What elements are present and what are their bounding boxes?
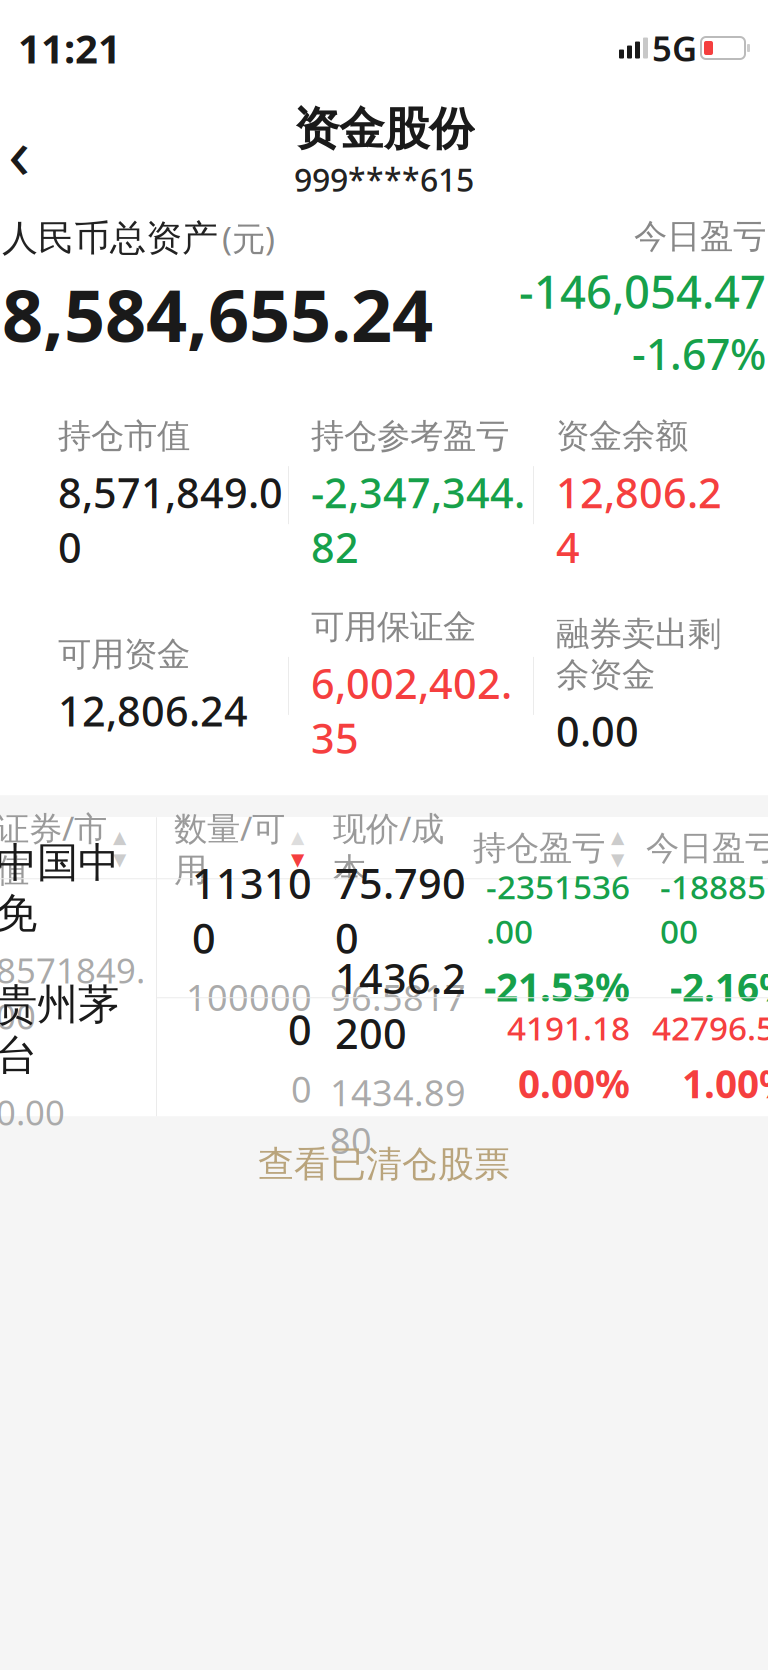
- staticText: 0: [288, 1002, 312, 1057]
- staticText: 资金余额: [556, 416, 688, 457]
- staticText: -2.16%: [670, 961, 768, 1012]
- staticText: 6,002,402.35: [311, 655, 512, 765]
- staticText: ▼: [291, 850, 304, 869]
- staticText: 查看已清仓股票: [258, 1142, 510, 1186]
- staticText: 持仓参考盈亏: [311, 416, 509, 457]
- staticText: 0.00: [556, 703, 639, 758]
- staticText: -2351536.00: [486, 864, 630, 953]
- staticText: 人民币总资产: [2, 216, 218, 260]
- button[interactable]: 返回: [0, 116, 54, 186]
- button[interactable]: 贵州茅台: [0, 998, 768, 1116]
- staticText: 12,806.24: [556, 465, 722, 574]
- staticText: 证券/市值: [0, 806, 107, 891]
- staticText: 100000: [186, 973, 312, 1021]
- staticText: ▼: [611, 850, 624, 869]
- button[interactable]: 中国中免: [0, 879, 768, 998]
- staticText: 0.00: [0, 1089, 65, 1135]
- staticText: 今日盈亏: [646, 828, 768, 869]
- staticText: 8,584,655.24: [2, 266, 433, 362]
- staticText: 1.00%: [682, 1058, 768, 1109]
- staticText: 今日盈亏: [634, 216, 766, 257]
- staticText: 999****615: [294, 158, 474, 201]
- staticText: 113100: [192, 855, 312, 965]
- staticText: 1434.8980: [330, 1068, 466, 1164]
- staticText: 8571849.00: [0, 947, 145, 1039]
- staticText: 1436.2200: [335, 950, 466, 1060]
- staticText: 持仓盈亏: [473, 828, 605, 869]
- staticText: 5G: [652, 25, 697, 71]
- staticText: 0: [291, 1065, 312, 1113]
- staticText: -146,054.47: [519, 261, 766, 321]
- staticText: ▲: [113, 827, 126, 847]
- staticText: 资金股份: [294, 101, 474, 157]
- staticText: 现价/成本: [333, 806, 444, 891]
- button[interactable]: 查看已清仓股票: [0, 1116, 768, 1212]
- staticText: -21.53%: [484, 961, 630, 1012]
- staticText: ▼: [113, 850, 126, 869]
- staticText: 11:21: [18, 21, 121, 74]
- staticText: 0.00%: [518, 1058, 630, 1109]
- staticText: ▲: [291, 827, 304, 847]
- staticText: 数量/可用: [174, 806, 285, 891]
- staticText: -1.67%: [632, 325, 766, 382]
- staticText: 融券卖出剩余资金: [556, 613, 721, 695]
- staticText: (元): [222, 216, 275, 260]
- staticText: 贵州茅台: [0, 979, 119, 1081]
- staticText: ‹: [8, 103, 30, 199]
- staticText: 8,571,849.00: [58, 465, 283, 574]
- staticText: -2,347,344.82: [311, 465, 525, 574]
- staticText: -188851.00: [660, 864, 768, 953]
- staticText: 中国中免: [0, 837, 119, 939]
- staticText: 75.7900: [335, 855, 466, 965]
- staticText: 96.5817: [330, 973, 466, 1021]
- staticText: 4191.18: [507, 1005, 630, 1050]
- staticText: 持仓市值: [58, 416, 190, 457]
- staticText: 可用资金: [58, 634, 190, 675]
- staticText: 12,806.24: [58, 683, 248, 738]
- staticText: 可用保证金: [311, 606, 476, 647]
- staticText: 42796.50: [652, 1005, 768, 1050]
- staticText: ▲: [611, 827, 624, 847]
